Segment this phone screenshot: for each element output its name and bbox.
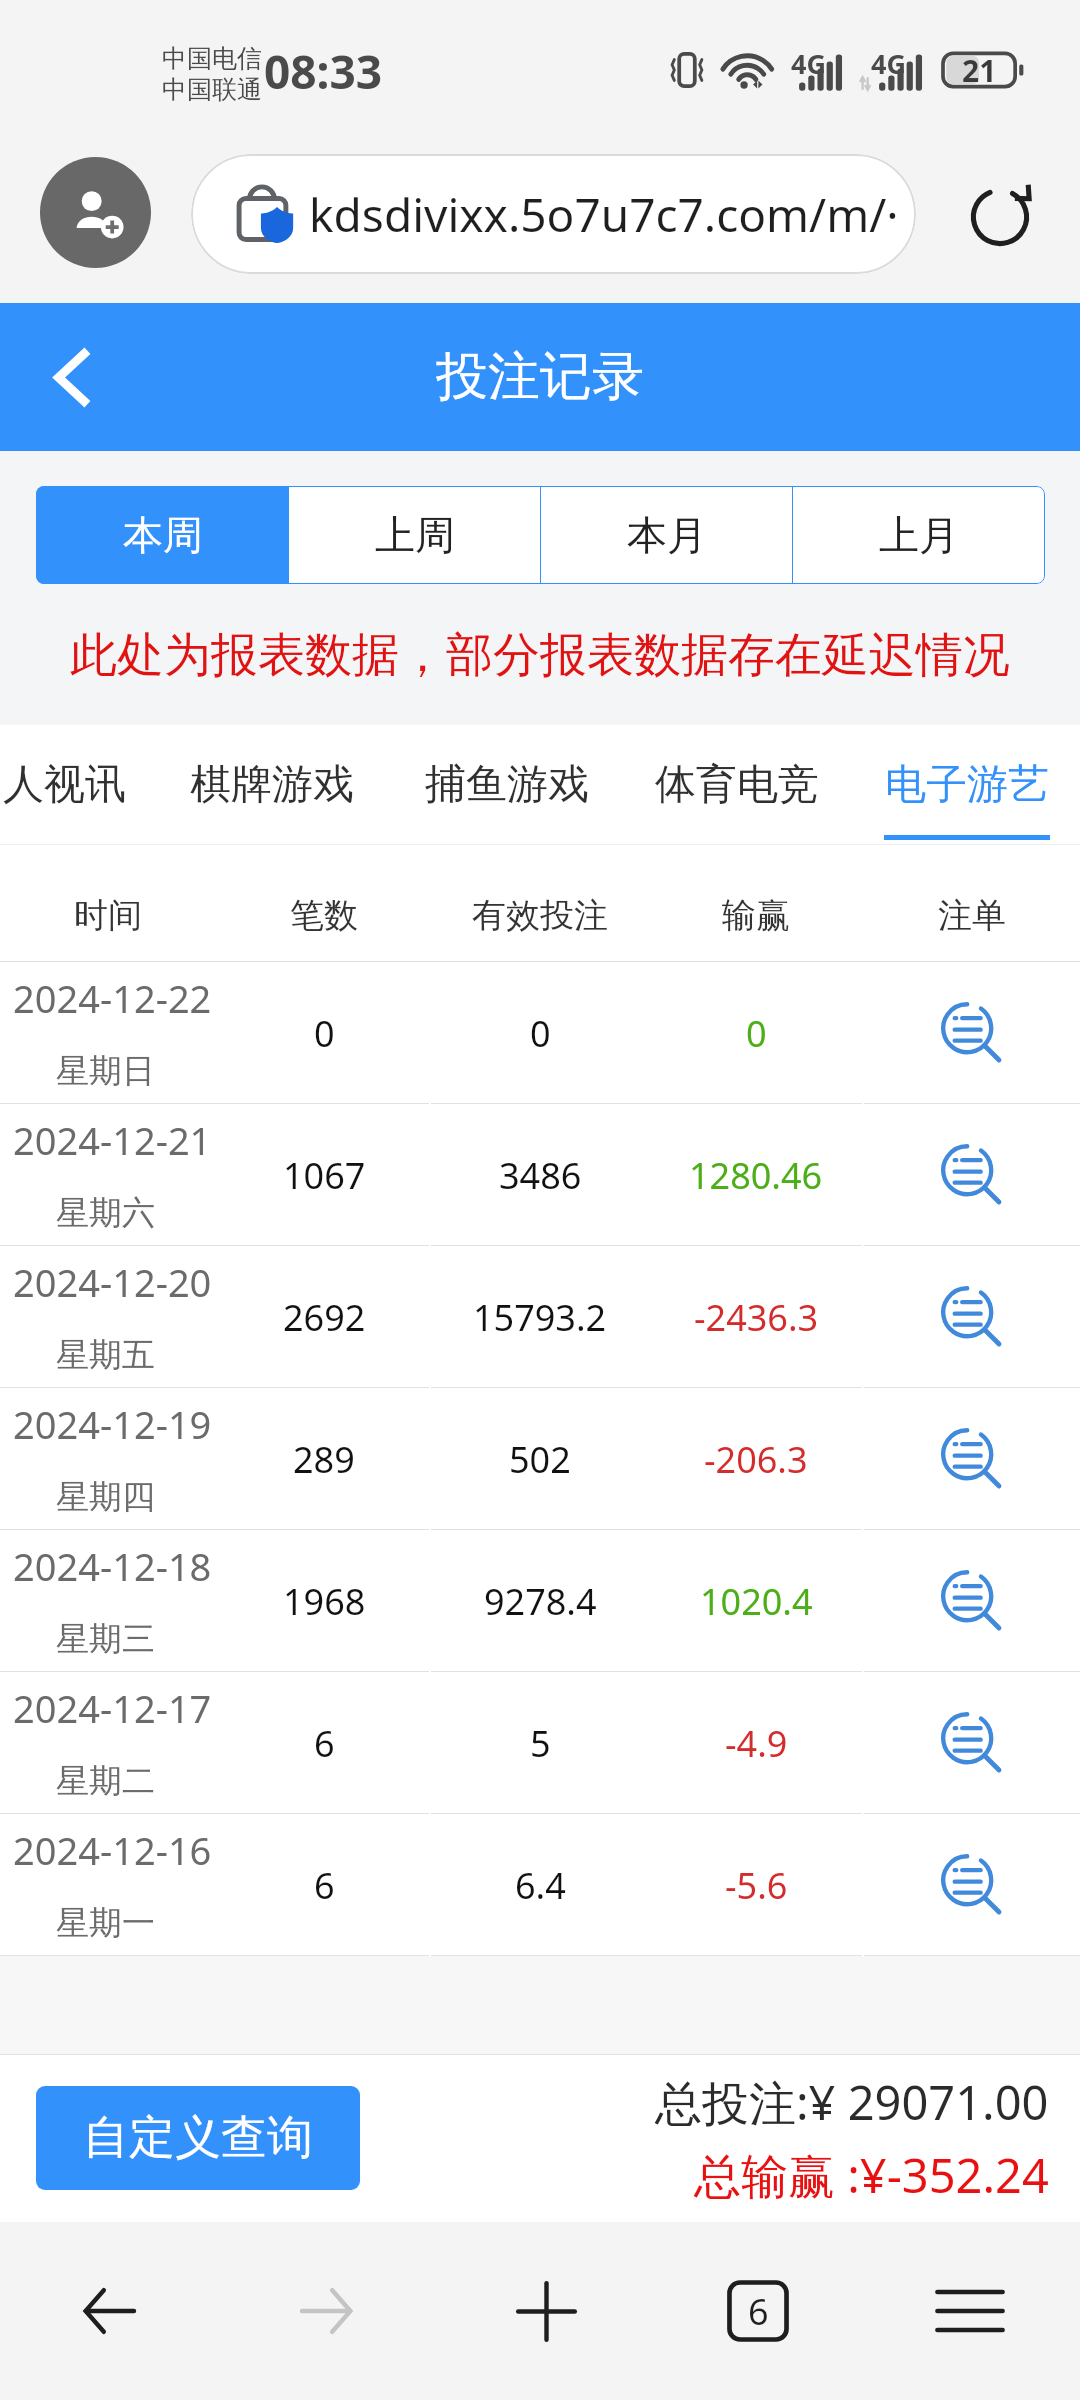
staticText: kdsdivixx.5o7u7c7.com/m/· [309,183,899,246]
button[interactable]: 本月 [541,486,793,584]
other: View details [942,1145,1002,1205]
button[interactable]: 上周 [289,486,541,584]
staticText: 捕鱼游戏 [425,759,589,811]
button[interactable]: 棋牌游戏 [189,725,355,845]
staticText: 星期五 [56,1334,155,1376]
button[interactable]: 自定义查询 [36,2086,360,2190]
staticText: 2024-12-16 [13,1824,212,1876]
button[interactable]: Back [28,332,118,422]
staticText: -206.3 [704,1435,808,1484]
staticText: 9278.4 [484,1577,597,1626]
staticText: 6 [314,1861,335,1910]
staticText: 总输赢 :¥-352.24 [694,2143,1049,2207]
staticText: 6.4 [515,1861,566,1910]
other: View details [942,1003,1002,1063]
button[interactable]: 上月 [793,486,1045,584]
staticText: 体育电竞 [655,759,819,811]
staticText: 棋牌游戏 [190,759,354,811]
staticText: 2692 [283,1293,366,1342]
button[interactable]: New tab [503,2268,589,2354]
staticText: -2436.3 [694,1293,819,1342]
staticText: 输赢 [722,894,790,937]
staticText: 笔数 [290,894,358,937]
button[interactable]: kdsdivixx.5o7u7c7.com/m/· [191,154,916,274]
staticText: 总投注:¥ 29071.00 [655,2070,1049,2134]
staticText: 本月 [627,510,707,560]
button[interactable]: 本周 [36,486,289,584]
button[interactable]: 2024-12-18 [0,1530,1080,1672]
staticText: 0 [314,1009,335,1058]
staticText: 自定义查询 [83,2109,313,2167]
staticText: 2024-12-20 [13,1256,212,1308]
staticText: -4.9 [725,1719,788,1768]
staticText: 5 [530,1719,551,1768]
staticText: 1067 [283,1151,366,1200]
other: View details [942,1429,1002,1489]
button[interactable]: 2024-12-16 [0,1814,1080,1956]
staticText: 星期日 [56,1050,155,1092]
button[interactable]: 电子游艺 [884,725,1050,845]
button[interactable]: Menu [927,2268,1013,2354]
button[interactable]: Profile [40,157,151,268]
other: View details [942,1713,1002,1773]
staticText: 08:33 [264,40,383,103]
staticText: -5.6 [725,1861,788,1910]
button[interactable]: 2024-12-17 [0,1672,1080,1814]
staticText: 0 [530,1009,551,1058]
staticText: 2024-12-18 [13,1540,212,1592]
staticText: 502 [509,1435,571,1484]
staticText: 2024-12-21 [13,1114,212,1166]
staticText: 1020.4 [700,1577,813,1626]
button[interactable]: Forward [284,2268,370,2354]
staticText: 星期三 [56,1618,155,1660]
staticText: 2024-12-22 [13,972,212,1024]
staticText: 15793.2 [473,1293,607,1342]
staticText: 星期六 [56,1192,155,1234]
staticText: 6 [748,2287,769,2336]
staticText: 星期四 [56,1476,155,1518]
staticText: 星期二 [56,1760,155,1802]
button[interactable]: Tabs [721,2274,795,2348]
other: View details [942,1287,1002,1347]
staticText: 4G [871,45,906,82]
staticText: 上月 [879,510,959,560]
staticText: 6 [314,1719,335,1768]
staticText: 2024-12-19 [13,1398,212,1450]
button[interactable]: 捕鱼游戏 [424,725,590,845]
button[interactable]: Back [66,2268,152,2354]
staticText: 本周 [123,510,203,560]
other: View details [942,1571,1002,1631]
staticText: 有效投注 [472,894,608,937]
staticText: 0 [746,1009,767,1058]
staticText: 中国联通 [162,74,262,105]
button[interactable]: 2024-12-19 [0,1388,1080,1530]
staticText: 1968 [283,1577,366,1626]
staticText: 21 [962,50,997,91]
other: View details [942,1855,1002,1915]
staticText: 4G [791,45,826,82]
staticText: 星期一 [56,1902,155,1944]
staticText: 此处为报表数据，部分报表数据存在延迟情况 [70,626,1010,685]
staticText: 2024-12-17 [13,1682,212,1734]
staticText: 1280.46 [689,1151,823,1200]
staticText: 3486 [499,1151,582,1200]
button[interactable]: 人视讯 [0,725,129,845]
button[interactable]: 2024-12-22 [0,962,1080,1104]
staticText: 投注记录 [436,344,644,410]
staticText: 注单 [938,894,1006,937]
staticText: 上周 [375,510,455,560]
button[interactable]: 体育电竞 [654,725,820,845]
staticText: 中国电信 [162,43,262,74]
staticText: 时间 [74,894,142,937]
button[interactable]: 2024-12-20 [0,1246,1080,1388]
button[interactable]: Reload [955,172,1045,262]
staticText: 289 [293,1435,355,1484]
button[interactable]: 2024-12-21 [0,1104,1080,1246]
staticText: 人视讯 [3,759,126,811]
staticText: 电子游艺 [885,759,1049,811]
